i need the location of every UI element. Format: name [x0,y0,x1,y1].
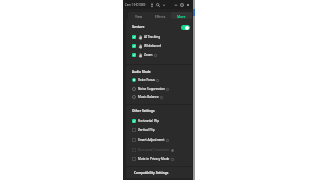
staticText: Horizontal Correction [138,148,170,152]
staticText: Zoom [144,53,153,57]
staticText: Gesture [132,25,145,29]
staticText: Music Balance [138,95,159,99]
button[interactable]: Music Balance [126,93,192,101]
button[interactable]: More options [161,2,167,8]
button[interactable]: Voice Focus [126,76,192,84]
staticText: More [177,14,186,18]
button[interactable]: Help [179,2,185,8]
staticText: View [135,14,143,18]
button[interactable]: Microphone [149,2,155,8]
staticText: Other Settings [132,109,155,113]
button[interactable]: Noise Suppression [126,85,192,93]
button[interactable]: Close [185,2,191,8]
button[interactable]: Smart Adjustment [126,136,192,144]
staticText: AI Tracking [144,35,161,39]
staticText: Vertical Flip [138,128,155,132]
button[interactable]: Compatibility Settings [126,167,192,178]
button[interactable]: Vertical Flip [126,126,192,134]
staticText: Whiteboard [144,44,162,48]
staticText: Cam 1 (HD1080) [125,3,146,7]
button[interactable]: Whiteboard [126,42,192,50]
staticText: Mute in Privacy Mode [138,157,170,161]
staticText: Horizontal Flip [138,119,160,123]
button[interactable]: View [128,12,150,19]
button[interactable]: Zoom [126,51,192,59]
button[interactable]: Search [155,2,161,8]
button[interactable]: Horizontal Flip [126,117,192,125]
button[interactable]: More [171,12,192,19]
staticText: Compatibility Settings [134,171,169,175]
button[interactable]: AI Tracking [126,33,192,41]
button[interactable]: Mute in Privacy Mode [126,155,192,163]
button[interactable]: Horizontal Correction [126,146,192,154]
staticText: Effects [155,14,166,18]
button[interactable]: Gesture toggle [180,23,190,31]
staticText: Noise Suppression [138,87,165,91]
button[interactable]: Minimize [173,2,179,8]
staticText: Smart Adjustment [138,138,165,142]
staticText: Voice Focus [138,78,155,82]
button[interactable]: Effects [150,12,171,19]
staticText: Audio Mode [132,70,151,74]
button[interactable]: Gesture [126,23,166,31]
